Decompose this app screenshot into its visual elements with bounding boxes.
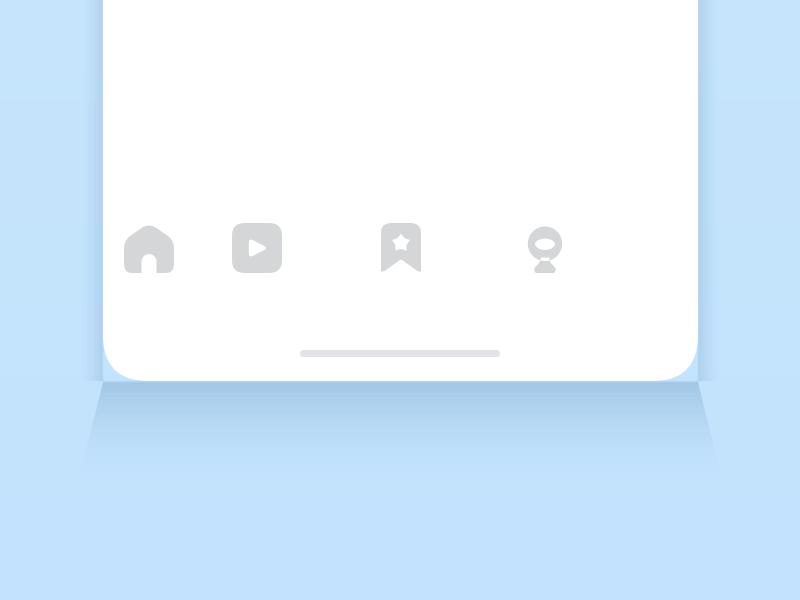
button[interactable]: Home — [113, 222, 185, 274]
button[interactable]: Profile — [473, 222, 617, 274]
button[interactable]: Videos — [185, 222, 329, 274]
button[interactable]: Saved — [329, 222, 473, 274]
